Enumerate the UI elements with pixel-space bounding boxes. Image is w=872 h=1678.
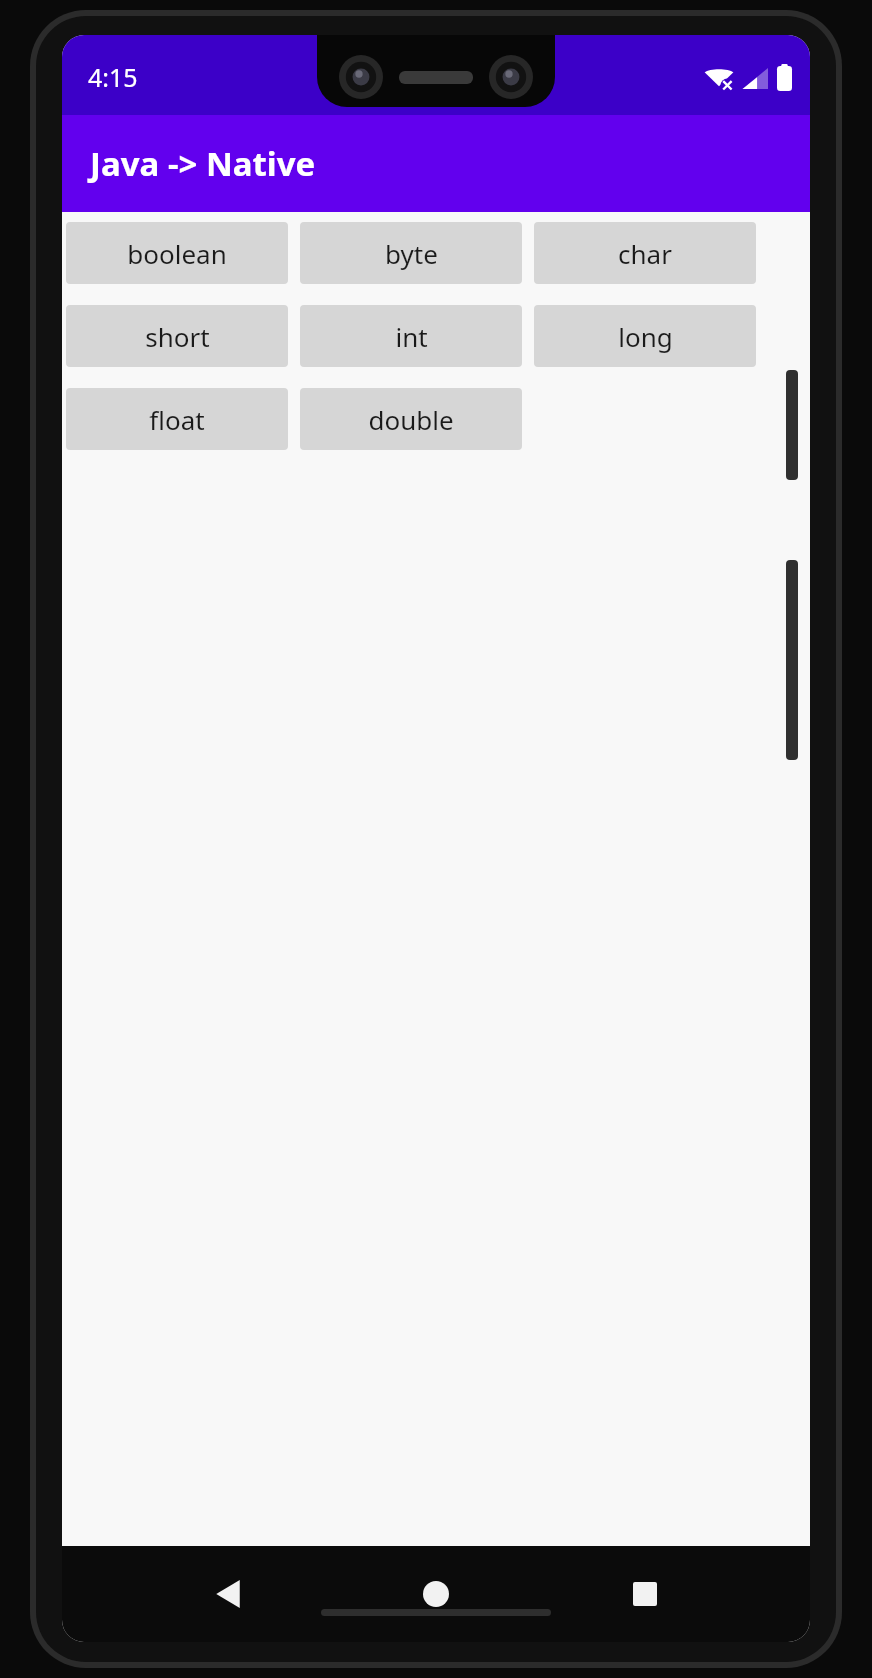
staticText: int bbox=[395, 319, 428, 354]
staticText: Java -> Native bbox=[90, 141, 316, 186]
button[interactable]: short bbox=[66, 305, 288, 367]
staticText: long bbox=[618, 319, 673, 354]
staticText: boolean bbox=[127, 236, 227, 271]
button[interactable]: Recent apps bbox=[602, 1551, 688, 1637]
staticText: char bbox=[618, 236, 672, 271]
staticText: short bbox=[145, 319, 210, 354]
button[interactable]: int bbox=[300, 305, 522, 367]
button[interactable]: float bbox=[66, 388, 288, 450]
button[interactable]: Back bbox=[185, 1551, 271, 1637]
staticText: 4:15 bbox=[88, 60, 138, 94]
button[interactable]: double bbox=[300, 388, 522, 450]
button[interactable]: Java -> Native bbox=[62, 115, 810, 212]
button[interactable]: Home bbox=[393, 1551, 479, 1637]
staticText: byte bbox=[385, 236, 438, 271]
staticText: float bbox=[149, 402, 205, 437]
staticText: double bbox=[368, 402, 454, 437]
button[interactable]: boolean bbox=[66, 222, 288, 284]
button[interactable]: long bbox=[534, 305, 756, 367]
button[interactable]: byte bbox=[300, 222, 522, 284]
button[interactable]: char bbox=[534, 222, 756, 284]
